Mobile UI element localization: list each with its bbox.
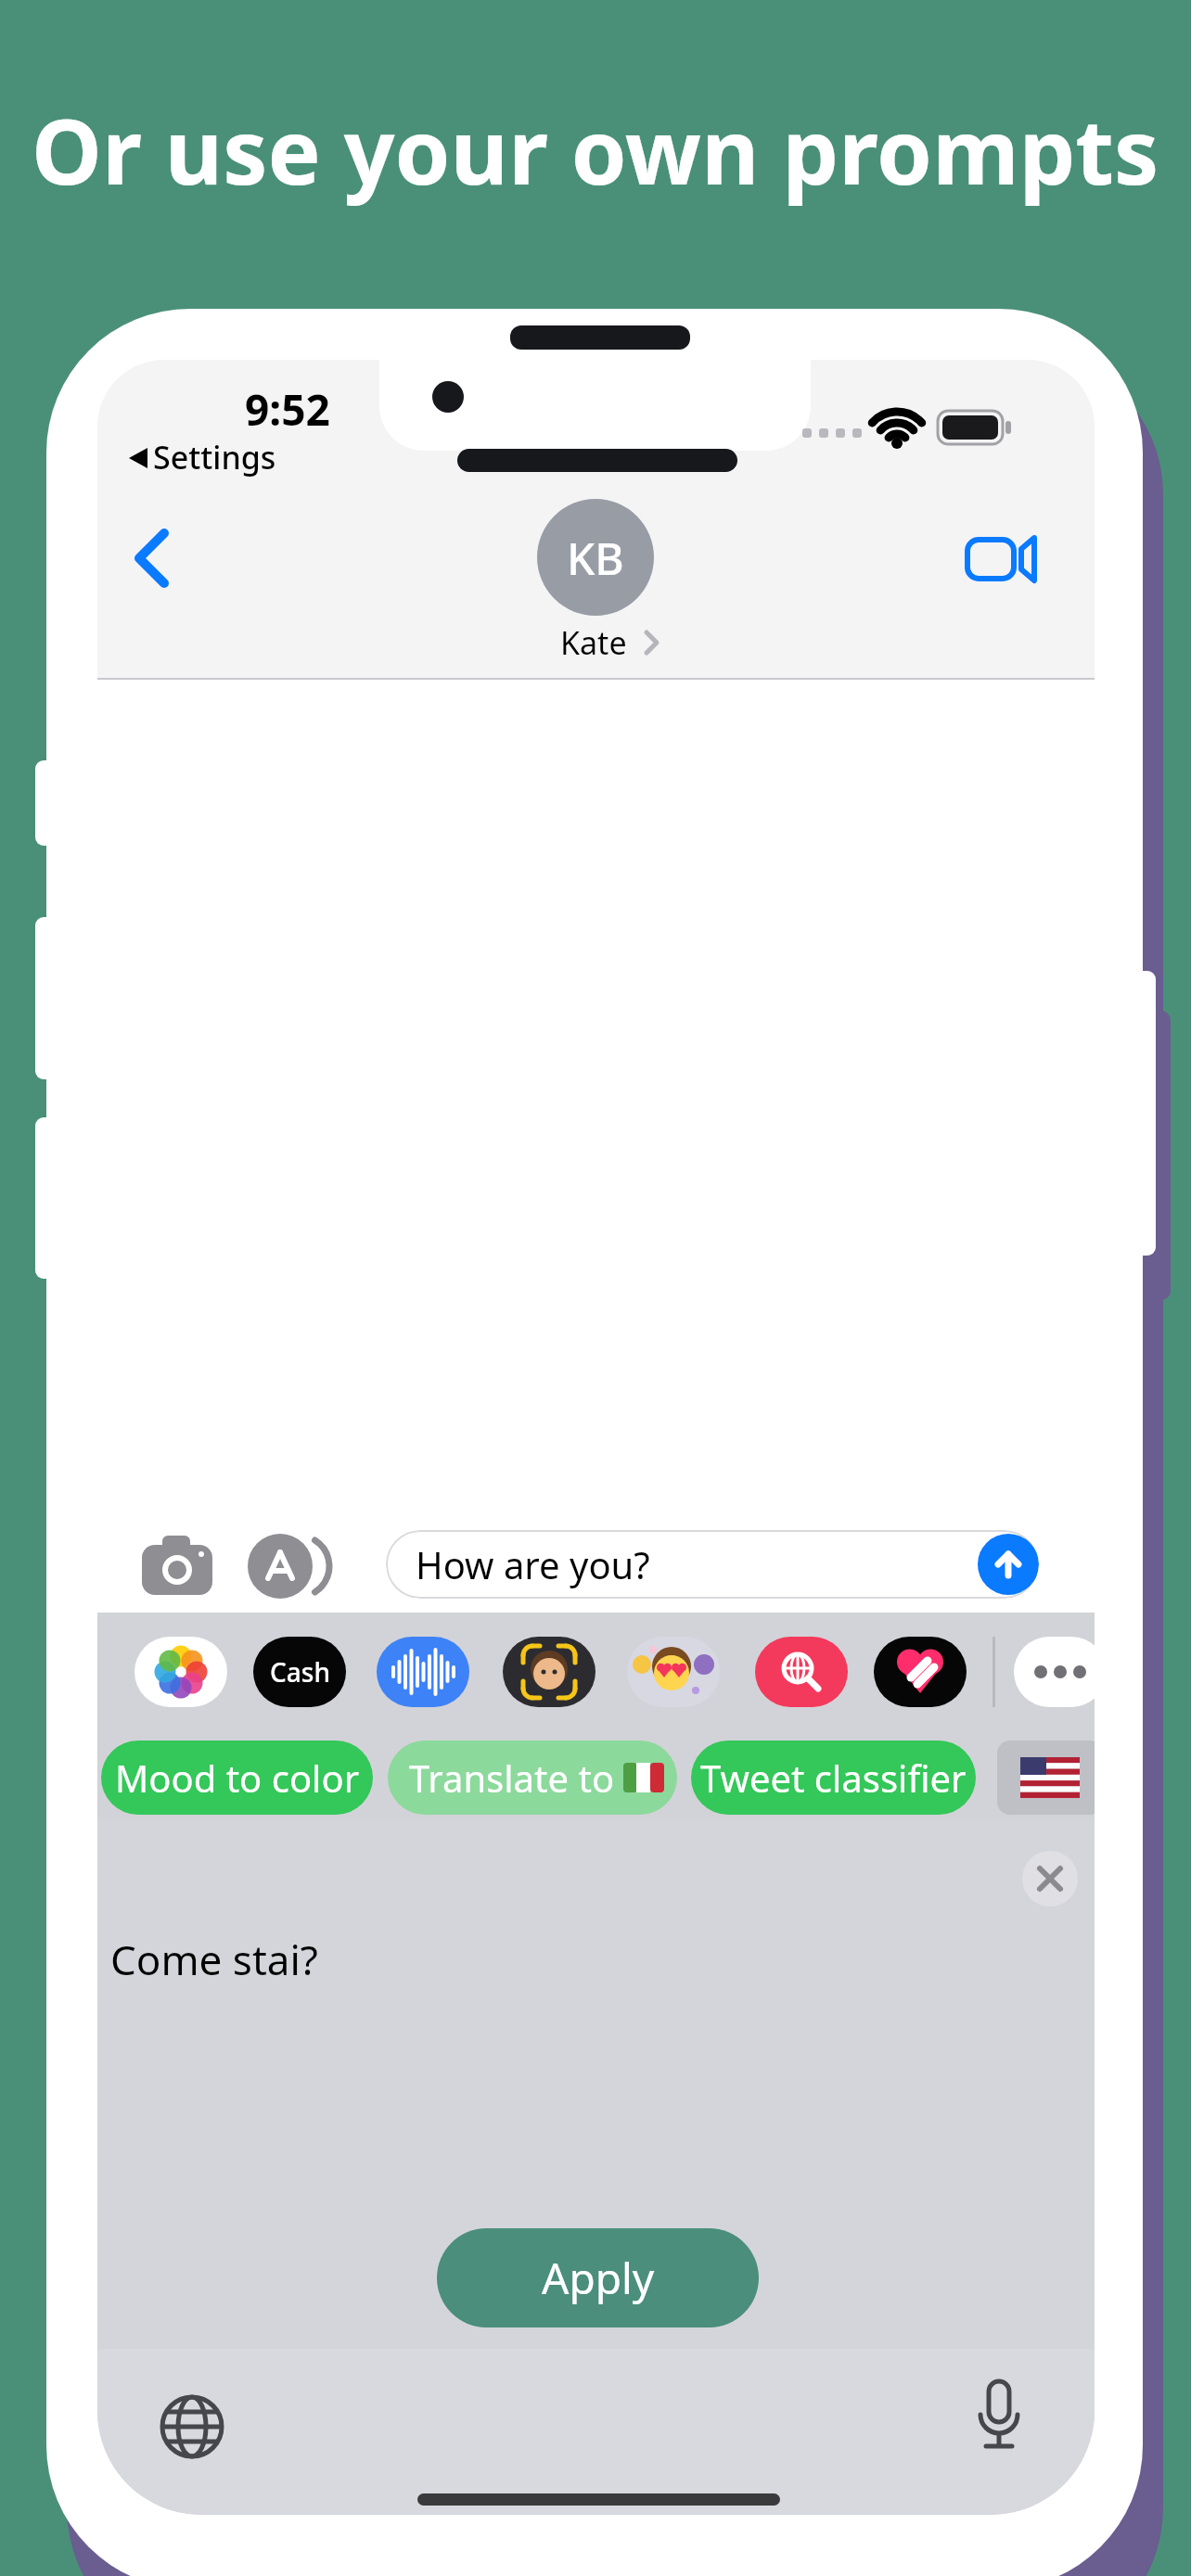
button[interactable]: [1014, 1637, 1095, 1707]
staticText: Kate: [560, 621, 627, 662]
button[interactable]: [755, 1637, 848, 1707]
staticText: How are you?: [416, 1539, 650, 1589]
button[interactable]: Apply: [437, 2228, 759, 2327]
button[interactable]: [121, 517, 186, 601]
button[interactable]: [874, 1637, 967, 1707]
button[interactable]: Cash: [253, 1637, 346, 1707]
button[interactable]: [997, 1741, 1095, 1815]
button[interactable]: [503, 1637, 595, 1707]
staticText: Or use your own prompts: [32, 89, 1159, 210]
button[interactable]: Translate to: [388, 1741, 677, 1815]
button[interactable]: [978, 1534, 1039, 1595]
staticText: 9:52: [245, 380, 330, 436]
button[interactable]: [140, 1534, 216, 1599]
button[interactable]: [159, 2393, 225, 2460]
staticText: Settings: [153, 436, 276, 478]
button[interactable]: How are you?: [386, 1530, 1039, 1599]
staticText: Apply: [542, 2249, 655, 2307]
button[interactable]: [966, 2379, 1032, 2463]
button[interactable]: [246, 1532, 329, 1600]
staticText: Translate to: [409, 1753, 615, 1803]
button[interactable]: [951, 527, 1053, 592]
button[interactable]: [627, 1637, 720, 1707]
staticText: Mood to color: [115, 1753, 360, 1803]
button[interactable]: [377, 1637, 469, 1707]
button[interactable]: Tweet classifier: [691, 1741, 976, 1815]
staticText: Cash: [270, 1654, 330, 1690]
button[interactable]: [134, 1637, 227, 1707]
staticText: Tweet classifier: [700, 1753, 967, 1803]
staticText: Come stai?: [110, 1932, 318, 1987]
staticText: KB: [567, 528, 624, 588]
button[interactable]: [1022, 1851, 1078, 1906]
button[interactable]: Mood to color: [101, 1741, 373, 1815]
